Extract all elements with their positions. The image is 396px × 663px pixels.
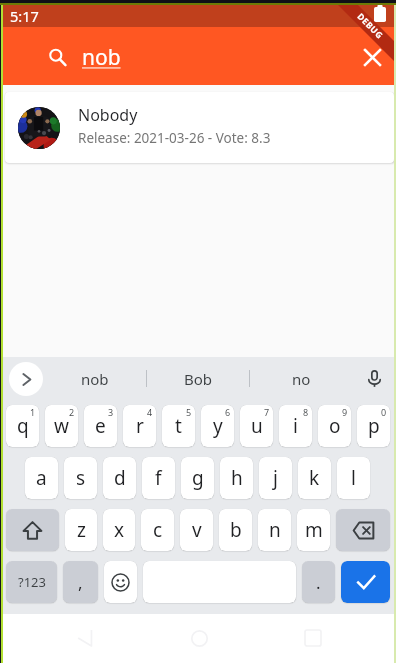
button[interactable]: w	[45, 405, 78, 447]
button[interactable]: u	[240, 405, 273, 447]
staticText: u	[251, 413, 263, 439]
staticText: 5	[186, 406, 192, 418]
staticText: v	[192, 517, 202, 543]
button[interactable]: j	[259, 457, 292, 499]
button[interactable]: h	[220, 457, 253, 499]
button[interactable]: q	[6, 405, 39, 447]
button[interactable]: e	[84, 405, 117, 447]
staticText: Release: 2021-03-26 - Vote: 8.3	[78, 129, 271, 147]
staticText: d	[114, 465, 126, 491]
button[interactable]: Bob	[147, 357, 249, 400]
button[interactable]: Voice input	[352, 357, 396, 400]
button[interactable]: nob	[82, 43, 121, 72]
staticText: no	[292, 369, 311, 389]
staticText: x	[114, 517, 125, 543]
staticText: 1	[30, 406, 36, 418]
staticText: j	[273, 465, 278, 491]
staticText: h	[231, 465, 243, 491]
staticText: y	[213, 413, 223, 439]
button[interactable]: Emoji	[104, 561, 137, 603]
button[interactable]: o	[318, 405, 351, 447]
staticText: 7	[264, 406, 270, 418]
button[interactable]: x	[103, 509, 135, 551]
staticText: 6	[225, 406, 231, 418]
staticText: .	[316, 571, 321, 594]
staticText: k	[309, 465, 320, 491]
button[interactable]: l	[337, 457, 370, 499]
staticText: c	[153, 517, 163, 543]
staticText: nob	[81, 369, 109, 389]
staticText: ?123	[18, 573, 46, 591]
button[interactable]: b	[219, 509, 252, 551]
staticText: Bob	[184, 369, 213, 389]
button[interactable]: k	[298, 457, 331, 499]
button[interactable]: n	[258, 509, 291, 551]
staticText: m	[305, 517, 323, 543]
staticText: Nobody	[78, 104, 138, 126]
button[interactable]: a	[25, 457, 58, 499]
button[interactable]: Shift	[6, 509, 59, 551]
staticText: 5:17	[10, 6, 39, 26]
staticText: o	[329, 413, 341, 439]
staticText: ,	[78, 571, 83, 594]
button[interactable]: m	[297, 509, 330, 551]
staticText: 2	[69, 406, 75, 418]
button[interactable]: i	[279, 405, 312, 447]
button[interactable]: s	[64, 457, 97, 499]
staticText: nob	[82, 43, 121, 72]
staticText: a	[36, 465, 47, 491]
button[interactable]: y	[201, 405, 234, 447]
button[interactable]: Enter	[341, 561, 390, 603]
button[interactable]: no	[250, 357, 352, 400]
staticText: t	[175, 413, 182, 439]
button[interactable]: t	[162, 405, 195, 447]
staticText: f	[155, 465, 162, 491]
staticText: 3	[108, 406, 114, 418]
button[interactable]: Nobody	[5, 92, 394, 163]
staticText: s	[76, 465, 86, 491]
button[interactable]: r	[123, 405, 156, 447]
staticText: i	[293, 413, 298, 439]
staticText: z	[77, 517, 86, 543]
staticText: r	[136, 413, 144, 439]
staticText: g	[192, 465, 204, 491]
staticText: p	[368, 413, 380, 439]
button[interactable]: Comma	[63, 561, 98, 603]
staticText: l	[351, 465, 356, 491]
button[interactable]: Symbols	[6, 561, 57, 603]
staticText: n	[269, 517, 281, 543]
button[interactable]: f	[142, 457, 175, 499]
staticText: q	[17, 413, 29, 439]
button[interactable]: g	[181, 457, 214, 499]
button[interactable]: More suggestions	[9, 362, 43, 396]
button[interactable]: c	[141, 509, 174, 551]
staticText: e	[95, 413, 106, 439]
button[interactable]: Clear search	[350, 35, 394, 79]
button[interactable]: z	[65, 509, 97, 551]
button[interactable]: d	[103, 457, 136, 499]
staticText: 4	[147, 406, 153, 418]
staticText: 9	[342, 406, 348, 418]
staticText: b	[230, 517, 242, 543]
button[interactable]: v	[180, 509, 213, 551]
button[interactable]: Period	[302, 561, 335, 603]
button[interactable]: Backspace	[336, 509, 390, 551]
button[interactable]: nob	[43, 357, 146, 400]
staticText: w	[54, 413, 69, 439]
staticText: DEBUG	[354, 10, 385, 41]
staticText: 8	[303, 406, 309, 418]
staticText: 0	[381, 406, 387, 418]
button[interactable]: p	[357, 405, 390, 447]
